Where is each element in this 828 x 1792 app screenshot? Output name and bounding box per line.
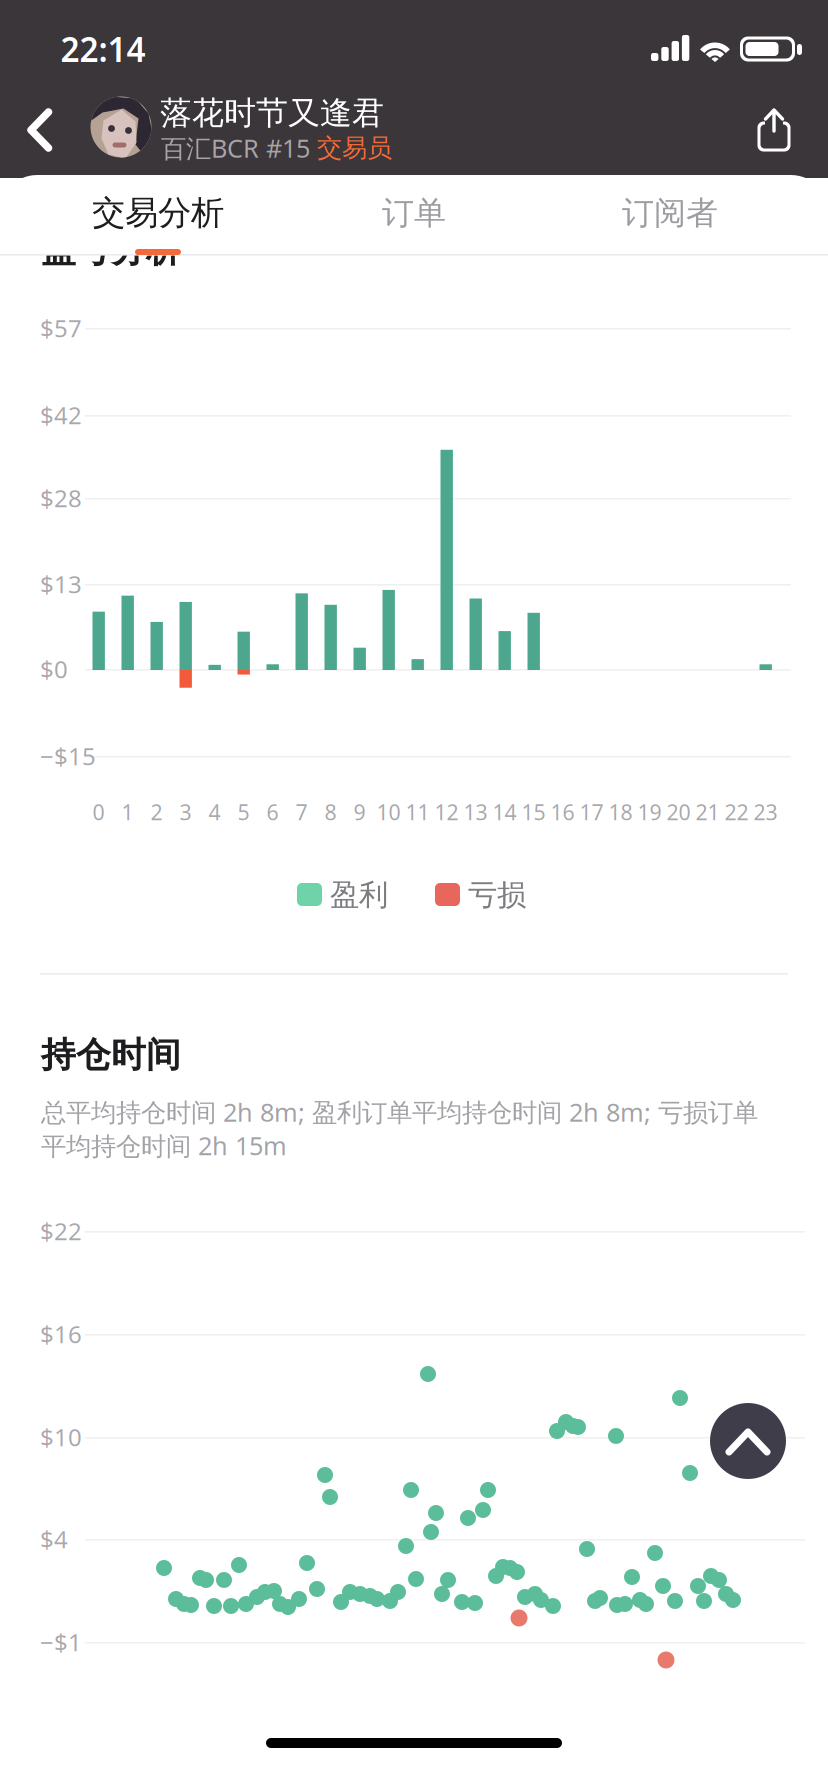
staticText: 15 (521, 798, 545, 826)
staticText: $0 (40, 653, 68, 685)
staticText: 2 (150, 798, 162, 826)
button[interactable]: 交易分析 (20, 174, 296, 252)
staticText: 持仓时间 (41, 1034, 181, 1076)
staticText: 11 (405, 798, 429, 826)
staticText: −$15 (40, 740, 96, 772)
staticText: $16 (40, 1318, 82, 1350)
staticText: $10 (40, 1421, 82, 1453)
staticText: 18 (608, 798, 632, 826)
staticText: 22 (724, 798, 748, 826)
staticText: 20 (666, 798, 690, 826)
staticText: 9 (353, 798, 365, 826)
button[interactable]: Share (732, 88, 816, 174)
staticText: 23 (753, 798, 777, 826)
staticText: 22:14 (60, 27, 145, 71)
staticText: 0 (92, 798, 104, 826)
staticText: 百汇BCR #15 (161, 131, 317, 165)
staticText: $13 (40, 568, 82, 600)
staticText: $22 (40, 1215, 82, 1247)
staticText: $4 (40, 1523, 68, 1555)
staticText: 13 (463, 798, 487, 826)
staticText: 交易分析 (92, 192, 224, 233)
button[interactable]: 订单 (276, 174, 552, 252)
staticText: 亏损 (468, 877, 526, 913)
button[interactable]: Scroll to top (706, 1399, 790, 1483)
staticText: 6 (266, 798, 278, 826)
staticText: $28 (40, 482, 82, 514)
staticText: 14 (492, 798, 516, 826)
staticText: 总平均持仓时间 2h 8m; 盈利订单平均持仓时间 2h 8m; 亏损订单平均持… (41, 1095, 758, 1162)
staticText: 7 (295, 798, 307, 826)
staticText: 交易员 (317, 132, 392, 163)
staticText: $42 (40, 399, 82, 431)
staticText: 1 (121, 798, 133, 826)
staticText: 5 (237, 798, 249, 826)
staticText: $57 (40, 312, 82, 344)
staticText: 10 (376, 798, 400, 826)
staticText: 4 (208, 798, 220, 826)
staticText: 8 (324, 798, 336, 826)
staticText: 3 (179, 798, 191, 826)
staticText: 订单 (382, 193, 446, 233)
staticText: 订阅者 (622, 193, 718, 233)
staticText: 盈亏分析 (41, 229, 181, 271)
staticText: 12 (434, 798, 458, 826)
staticText: 落花时节又逢君 (160, 93, 384, 133)
staticText: 21 (695, 798, 719, 826)
button[interactable]: 订阅者 (532, 174, 808, 252)
staticText: 16 (550, 798, 574, 826)
staticText: −$1 (40, 1626, 82, 1658)
staticText: 盈利 (330, 877, 388, 913)
staticText: 19 (637, 798, 661, 826)
staticText: 17 (579, 798, 603, 826)
button[interactable]: Back (8, 88, 92, 174)
